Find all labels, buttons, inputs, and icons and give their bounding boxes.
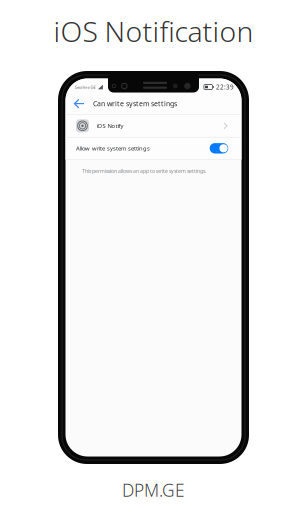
button[interactable]: Allow write system settings	[210, 143, 228, 154]
staticText: Can write system settings	[93, 99, 177, 108]
staticText: DPM.GE	[122, 478, 185, 502]
staticText: Allow write system settings	[76, 144, 150, 152]
button[interactable]: iOS Notify	[65, 115, 241, 137]
staticText: iOS Notify	[96, 122, 123, 130]
staticText: iOS Notification	[53, 12, 253, 50]
staticText: This permission allows an app to write s…	[82, 167, 206, 174]
button[interactable]: Back	[69, 94, 89, 114]
staticText: 22:39	[216, 83, 234, 91]
button[interactable]: Allow write system settings	[65, 138, 241, 159]
staticText: Geoline GE	[74, 84, 95, 90]
